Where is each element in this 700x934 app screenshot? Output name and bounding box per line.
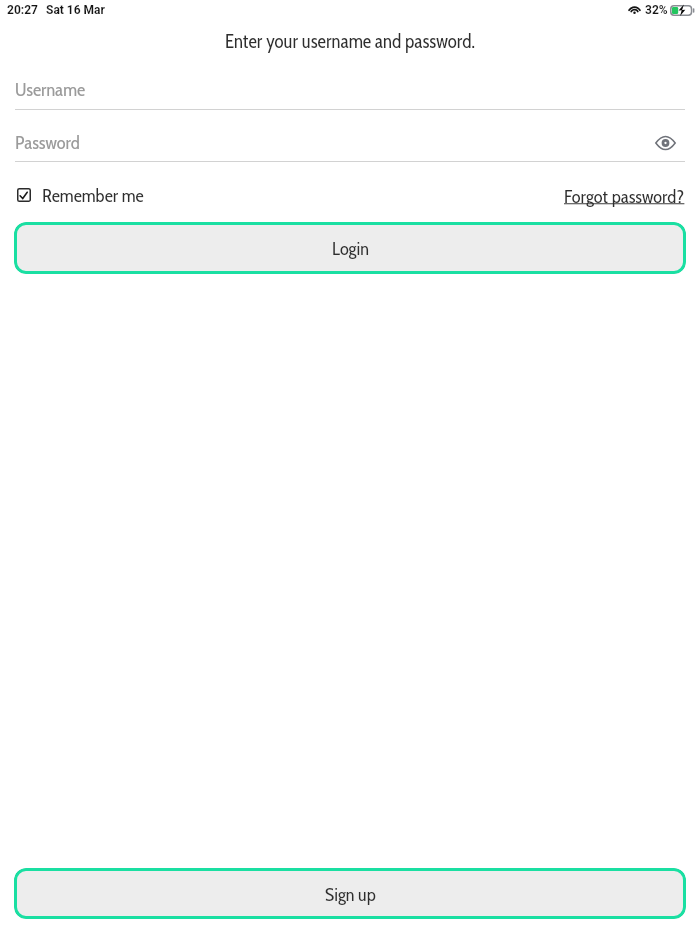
button[interactable]: Remember me: [17, 184, 144, 206]
staticText: Login: [332, 237, 369, 259]
staticText: Sign up: [325, 883, 376, 905]
button[interactable]: Login: [14, 222, 686, 274]
button[interactable]: Password: [15, 125, 685, 163]
staticText: Forgot password?: [564, 185, 685, 207]
staticText: 20:27: [7, 3, 38, 17]
staticText: Username: [15, 78, 86, 100]
staticText: Password: [15, 131, 80, 153]
staticText: Enter your username and password.: [0, 30, 700, 53]
staticText: 32%: [645, 3, 668, 17]
button[interactable]: Sign up: [14, 868, 686, 919]
button[interactable]: Show password: [650, 129, 680, 157]
staticText: Sat 16 Mar: [46, 3, 105, 17]
staticText: Remember me: [42, 184, 144, 206]
button[interactable]: Forgot password?: [564, 185, 685, 207]
button[interactable]: Username: [15, 72, 685, 110]
